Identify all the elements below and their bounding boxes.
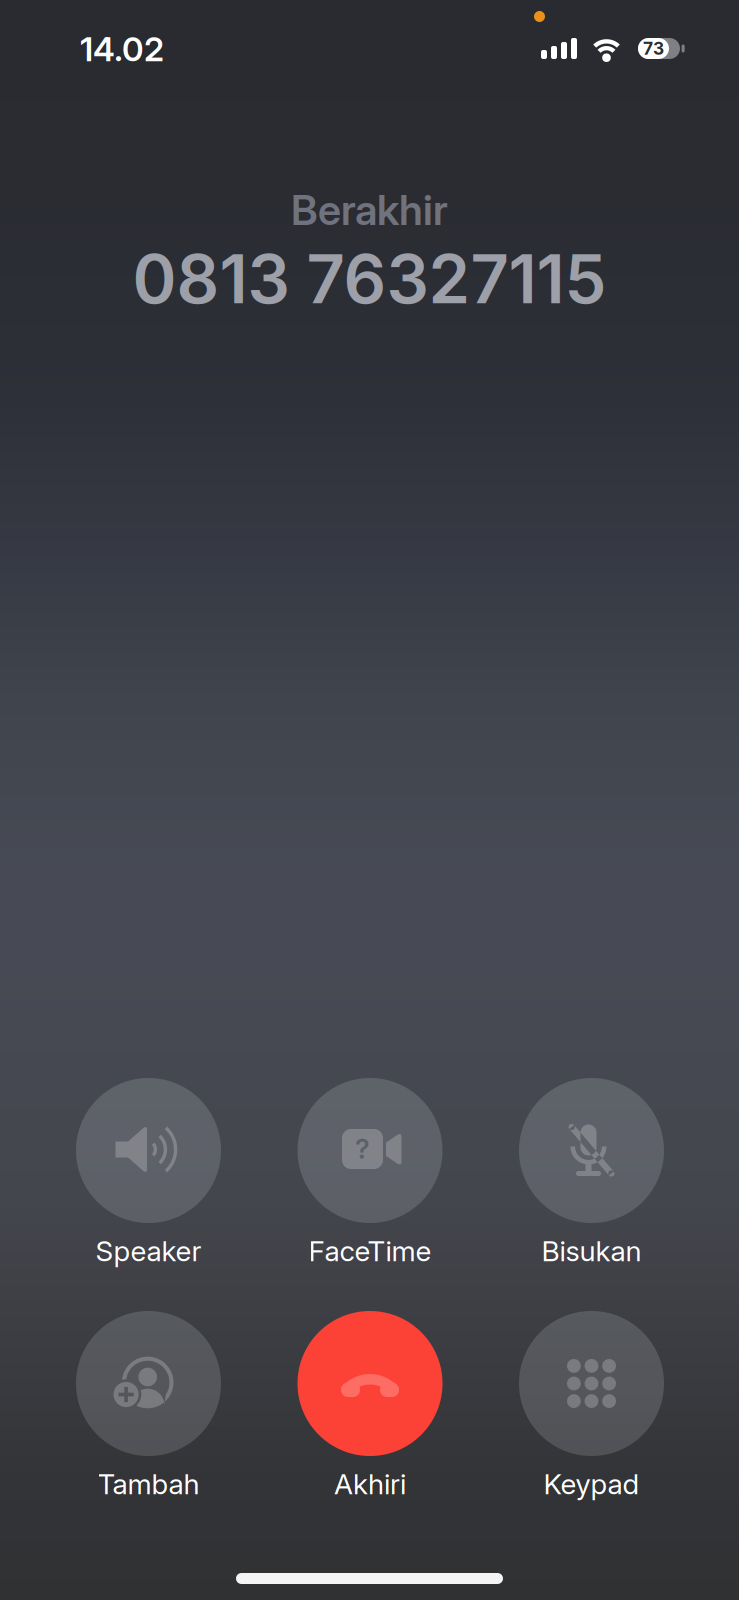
- staticText: Speaker: [95, 1234, 201, 1268]
- button[interactable]: ?: [275, 1078, 465, 1267]
- staticText: ?: [355, 1133, 370, 1165]
- button[interactable]: Keypad: [496, 1311, 686, 1500]
- staticText: 0813 76327115: [132, 239, 606, 319]
- button[interactable]: Tambah: [53, 1311, 243, 1500]
- staticText: Berakhir: [291, 185, 448, 235]
- staticText: 73: [643, 38, 664, 59]
- staticText: Akhiri: [334, 1467, 406, 1501]
- button[interactable]: Akhiri: [275, 1311, 465, 1500]
- staticText: Keypad: [543, 1467, 639, 1501]
- button[interactable]: Speaker: [53, 1078, 243, 1267]
- staticText: Tambah: [97, 1467, 199, 1501]
- staticText: 14.02: [80, 29, 164, 69]
- staticText: Bisukan: [541, 1234, 641, 1268]
- button[interactable]: Bisukan: [496, 1078, 686, 1267]
- staticText: FaceTime: [308, 1234, 431, 1268]
